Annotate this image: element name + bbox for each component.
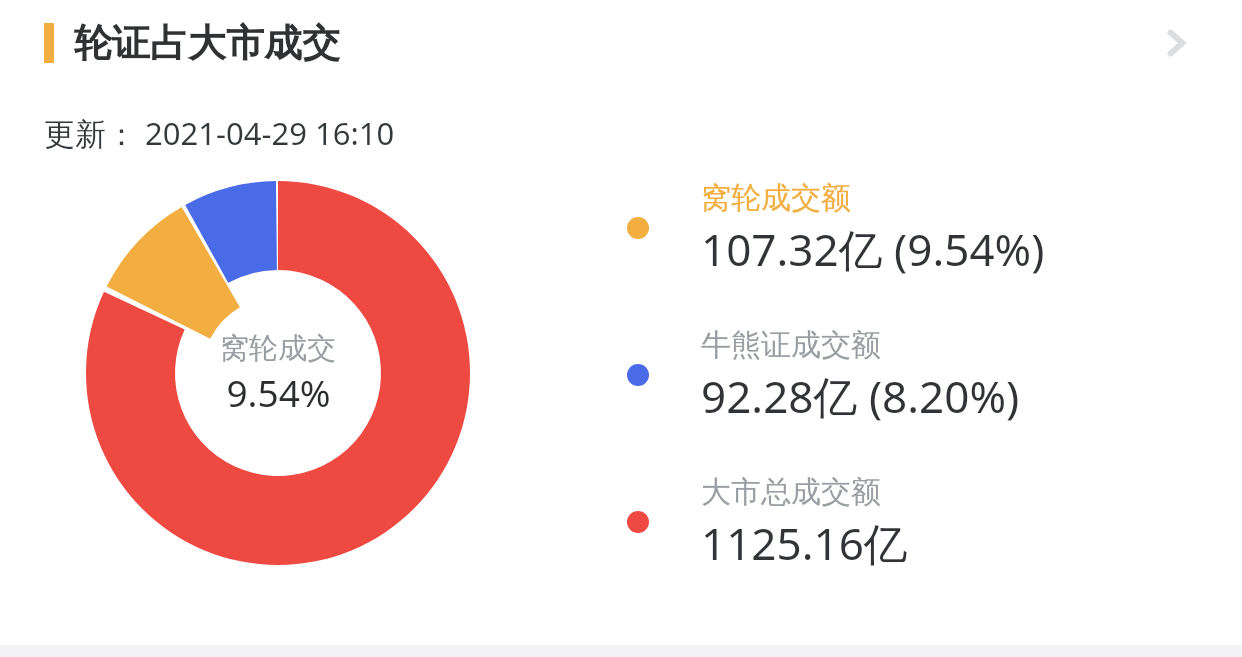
- button[interactable]: More: [1136, 3, 1216, 83]
- staticText: 107.32亿 (9.54%): [701, 219, 1045, 279]
- button[interactable]: 窝轮成交额: [620, 168, 1180, 288]
- staticText: 窝轮成交额: [701, 179, 851, 217]
- staticText: 1125.16亿: [701, 513, 908, 573]
- staticText: 轮证占大市成交: [74, 19, 340, 67]
- button[interactable]: 轮证占大市成交: [0, 0, 1242, 86]
- staticText: 窝轮成交: [220, 330, 336, 367]
- staticText: 牛熊证成交额: [701, 326, 881, 364]
- staticText: 9.54%: [226, 367, 331, 417]
- staticText: 92.28亿 (8.20%): [701, 366, 1020, 426]
- button[interactable]: 牛熊证成交额: [620, 315, 1180, 435]
- staticText: 大市总成交额: [701, 473, 881, 511]
- staticText: 更新： 2021-04-29 16:10: [44, 112, 395, 154]
- button[interactable]: 大市总成交额: [620, 462, 1180, 582]
- button[interactable]: 窝轮成交: [86, 181, 470, 565]
